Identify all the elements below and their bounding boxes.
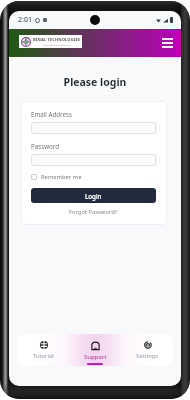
button[interactable] bbox=[31, 154, 156, 166]
staticText: Email Address bbox=[31, 110, 72, 118]
button[interactable]: Remember me bbox=[31, 173, 82, 181]
button[interactable]: Forgot Password? bbox=[69, 208, 118, 216]
button[interactable]: Open navigation menu bbox=[159, 35, 176, 51]
staticText: ENGINEERING EXCELLENCE bbox=[43, 44, 72, 47]
staticText: Tutorial bbox=[33, 352, 54, 360]
staticText: Please login bbox=[9, 75, 181, 89]
staticText: Login bbox=[85, 192, 102, 200]
staticText: 2:01 bbox=[18, 15, 32, 25]
button[interactable] bbox=[31, 122, 156, 134]
staticText: Support bbox=[84, 353, 107, 361]
staticText: Settings bbox=[136, 352, 159, 360]
staticText: Password bbox=[31, 142, 59, 150]
button[interactable]: Settings bbox=[121, 334, 173, 366]
staticText: BINAL TECHNOLOGIES bbox=[33, 37, 81, 43]
button[interactable]: Support bbox=[69, 334, 121, 366]
button[interactable]: Tutorial bbox=[17, 334, 69, 366]
button[interactable]: Login bbox=[31, 188, 156, 203]
staticText: Remember me bbox=[41, 173, 82, 181]
